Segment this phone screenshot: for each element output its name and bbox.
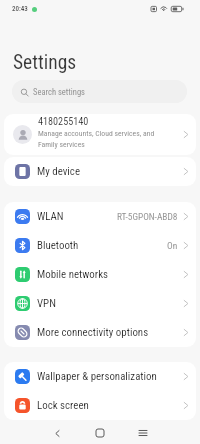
staticText: Manage accounts, Cloud services, and Fam…	[38, 129, 164, 149]
staticText: On	[167, 240, 178, 251]
button[interactable]: Wallpaper & personalization	[4, 362, 196, 391]
button[interactable]: WLAN	[4, 202, 196, 231]
button[interactable]: Bluetooth	[4, 231, 196, 260]
staticText: Wallpaper & personalization	[37, 370, 157, 383]
staticText: Settings	[13, 51, 77, 74]
staticText: Lock screen	[37, 399, 89, 412]
staticText: My device	[37, 165, 80, 178]
button[interactable]: Search settings	[12, 80, 187, 103]
staticText: More connectivity options	[37, 326, 149, 339]
button[interactable]: Back	[46, 422, 68, 444]
button[interactable]: Recents	[132, 422, 154, 444]
staticText: Mobile networks	[37, 268, 109, 281]
button[interactable]: Home	[89, 422, 111, 444]
button[interactable]: More connectivity options	[4, 318, 196, 347]
button[interactable]: Lock screen	[4, 391, 196, 420]
button[interactable]: My device	[4, 157, 196, 186]
staticText: WLAN	[37, 210, 64, 223]
staticText: VPN	[37, 297, 56, 310]
button[interactable]: VPN	[4, 289, 196, 318]
staticText: 4180255140	[38, 116, 89, 128]
button[interactable]: Mobile networks	[4, 260, 196, 289]
button[interactable]: 4180255140	[4, 114, 196, 155]
staticText: 20:43	[12, 5, 28, 13]
staticText: Search settings	[33, 87, 85, 97]
staticText: Bluetooth	[37, 239, 79, 252]
staticText: RT-5GPON-ABD8	[117, 211, 178, 222]
